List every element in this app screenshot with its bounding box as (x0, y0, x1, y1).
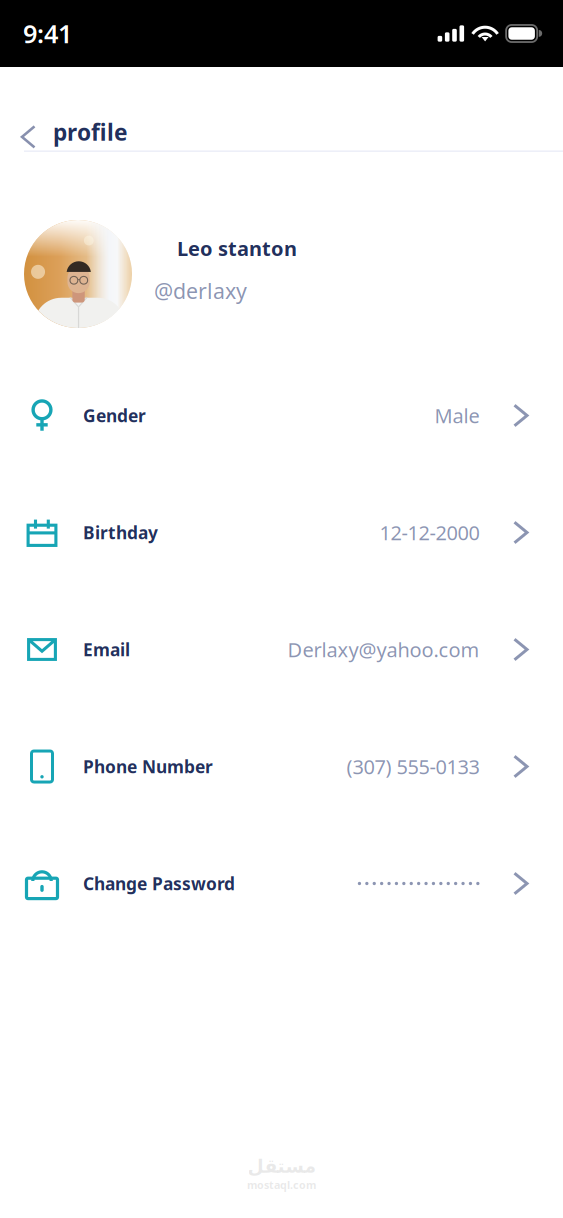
staticText: (307) 555-0133 (346, 753, 479, 780)
staticText: Change Password (83, 872, 235, 895)
button[interactable]: Back (0, 114, 53, 149)
button[interactable]: Phone Number (0, 708, 563, 825)
staticText: مستقل (247, 1156, 316, 1177)
staticText: @derlaxy (154, 277, 247, 305)
button[interactable]: Gender (0, 357, 563, 474)
button[interactable]: Email (0, 591, 563, 708)
staticText: Phone Number (83, 755, 213, 778)
button[interactable]: Birthday (0, 474, 563, 591)
staticText: Male (434, 402, 479, 429)
staticText: Leo stanton (177, 235, 297, 262)
staticText: Email (83, 638, 130, 661)
staticText: 9:41 (23, 17, 72, 50)
staticText: Birthday (83, 521, 158, 544)
staticText: mostaql.com (247, 1178, 316, 1192)
button[interactable]: Change Password (0, 825, 563, 942)
staticText: Derlaxy@yahoo.com (287, 636, 479, 663)
staticText: Gender (83, 404, 146, 427)
staticText: profile (53, 117, 128, 147)
staticText: 12-12-2000 (379, 519, 479, 546)
